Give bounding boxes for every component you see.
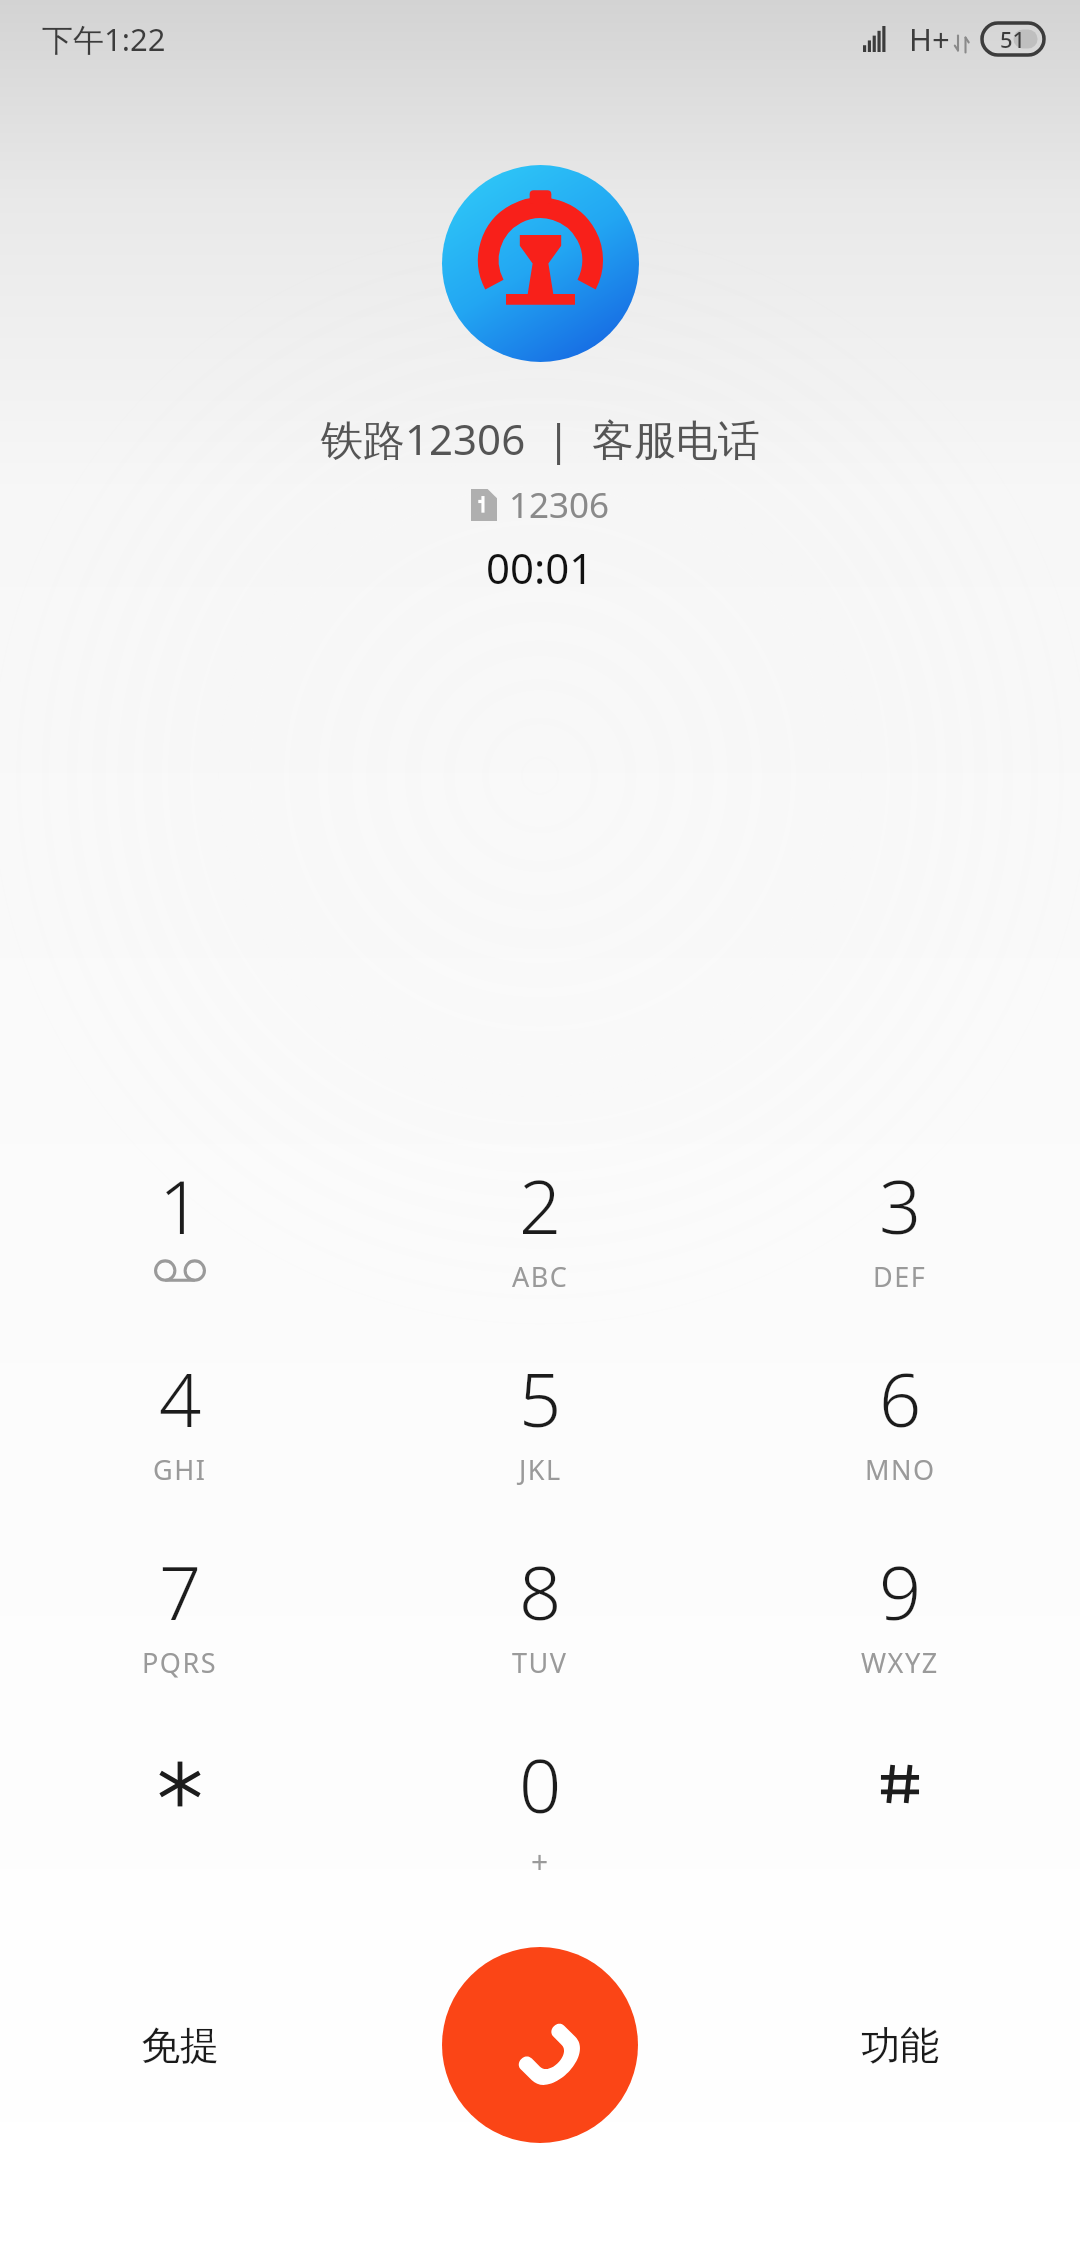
staticText: 铁路12306 | 客服电话	[321, 410, 760, 467]
staticText: 51	[1000, 24, 1026, 54]
staticText: 4	[159, 1348, 202, 1449]
staticText: 3	[879, 1155, 922, 1256]
staticText: 7	[159, 1541, 202, 1642]
staticText: JKL	[519, 1451, 562, 1488]
button[interactable]: 7	[0, 1541, 360, 1734]
staticText: 6	[879, 1348, 922, 1449]
staticText: 5	[519, 1348, 562, 1449]
button[interactable]: 5	[360, 1348, 720, 1541]
staticText: 功能	[861, 2021, 939, 2070]
button[interactable]	[0, 1734, 360, 1934]
staticText: 0	[519, 1734, 562, 1835]
staticText: DEF	[873, 1258, 927, 1295]
button[interactable]: 0	[360, 1734, 720, 1934]
staticText: 免提	[141, 2021, 219, 2070]
staticText: 12306	[509, 481, 610, 529]
staticText: 00:01	[486, 539, 594, 596]
staticText: TUV	[512, 1644, 568, 1681]
button[interactable]: End call	[442, 1947, 638, 2143]
staticText: 8	[519, 1541, 562, 1642]
button[interactable]: 免提	[0, 1945, 360, 2145]
button[interactable]: 8	[360, 1541, 720, 1734]
button[interactable]: 2	[360, 1155, 720, 1348]
staticText: 2	[519, 1155, 562, 1256]
button[interactable]: 1	[0, 1155, 360, 1348]
button[interactable]	[720, 1734, 1080, 1934]
button[interactable]: 9	[720, 1541, 1080, 1734]
staticText: PQRS	[142, 1644, 218, 1681]
staticText: 下午1:22	[42, 18, 166, 60]
staticText: MNO	[865, 1451, 936, 1488]
staticText: 1	[159, 1155, 202, 1256]
staticText: GHI	[153, 1451, 207, 1488]
staticText: +	[531, 1841, 550, 1882]
staticText: 9	[879, 1541, 922, 1642]
staticText: WXYZ	[861, 1644, 939, 1681]
staticText: ABC	[512, 1258, 569, 1295]
button[interactable]: 4	[0, 1348, 360, 1541]
button[interactable]: 6	[720, 1348, 1080, 1541]
button[interactable]: 3	[720, 1155, 1080, 1348]
button[interactable]: 功能	[720, 1945, 1080, 2145]
staticText: H+	[909, 18, 950, 60]
